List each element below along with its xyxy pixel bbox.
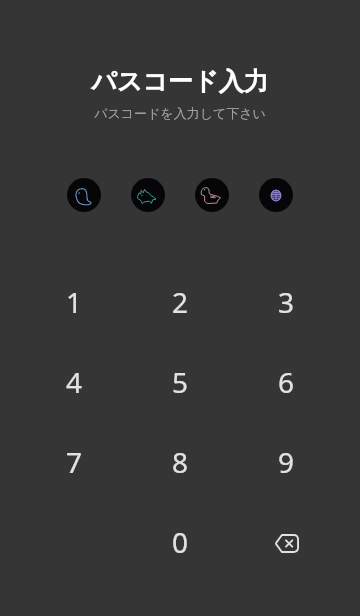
button[interactable]: 8: [127, 422, 233, 502]
button[interactable]: 5: [127, 342, 233, 422]
button[interactable]: 0: [127, 502, 233, 582]
staticText: 7: [66, 443, 83, 481]
button[interactable]: 2: [127, 262, 233, 342]
button[interactable]: 6: [233, 342, 339, 422]
button[interactable]: 1: [21, 262, 127, 342]
staticText: パスコードを入力して下さい: [94, 105, 266, 121]
staticText: 2: [172, 283, 189, 321]
button[interactable]: Delete: [233, 502, 339, 582]
staticText: パスコード入力: [91, 66, 269, 97]
staticText: 5: [172, 363, 189, 401]
button[interactable]: 7: [21, 422, 127, 502]
staticText: 9: [278, 443, 295, 481]
staticText: 1: [66, 283, 83, 321]
staticText: 0: [172, 523, 189, 561]
staticText: 3: [278, 283, 295, 321]
staticText: 4: [66, 363, 83, 401]
staticText: 8: [172, 443, 189, 481]
button[interactable]: 4: [21, 342, 127, 422]
button[interactable]: 9: [233, 422, 339, 502]
button[interactable]: 3: [233, 262, 339, 342]
staticText: 6: [278, 363, 295, 401]
